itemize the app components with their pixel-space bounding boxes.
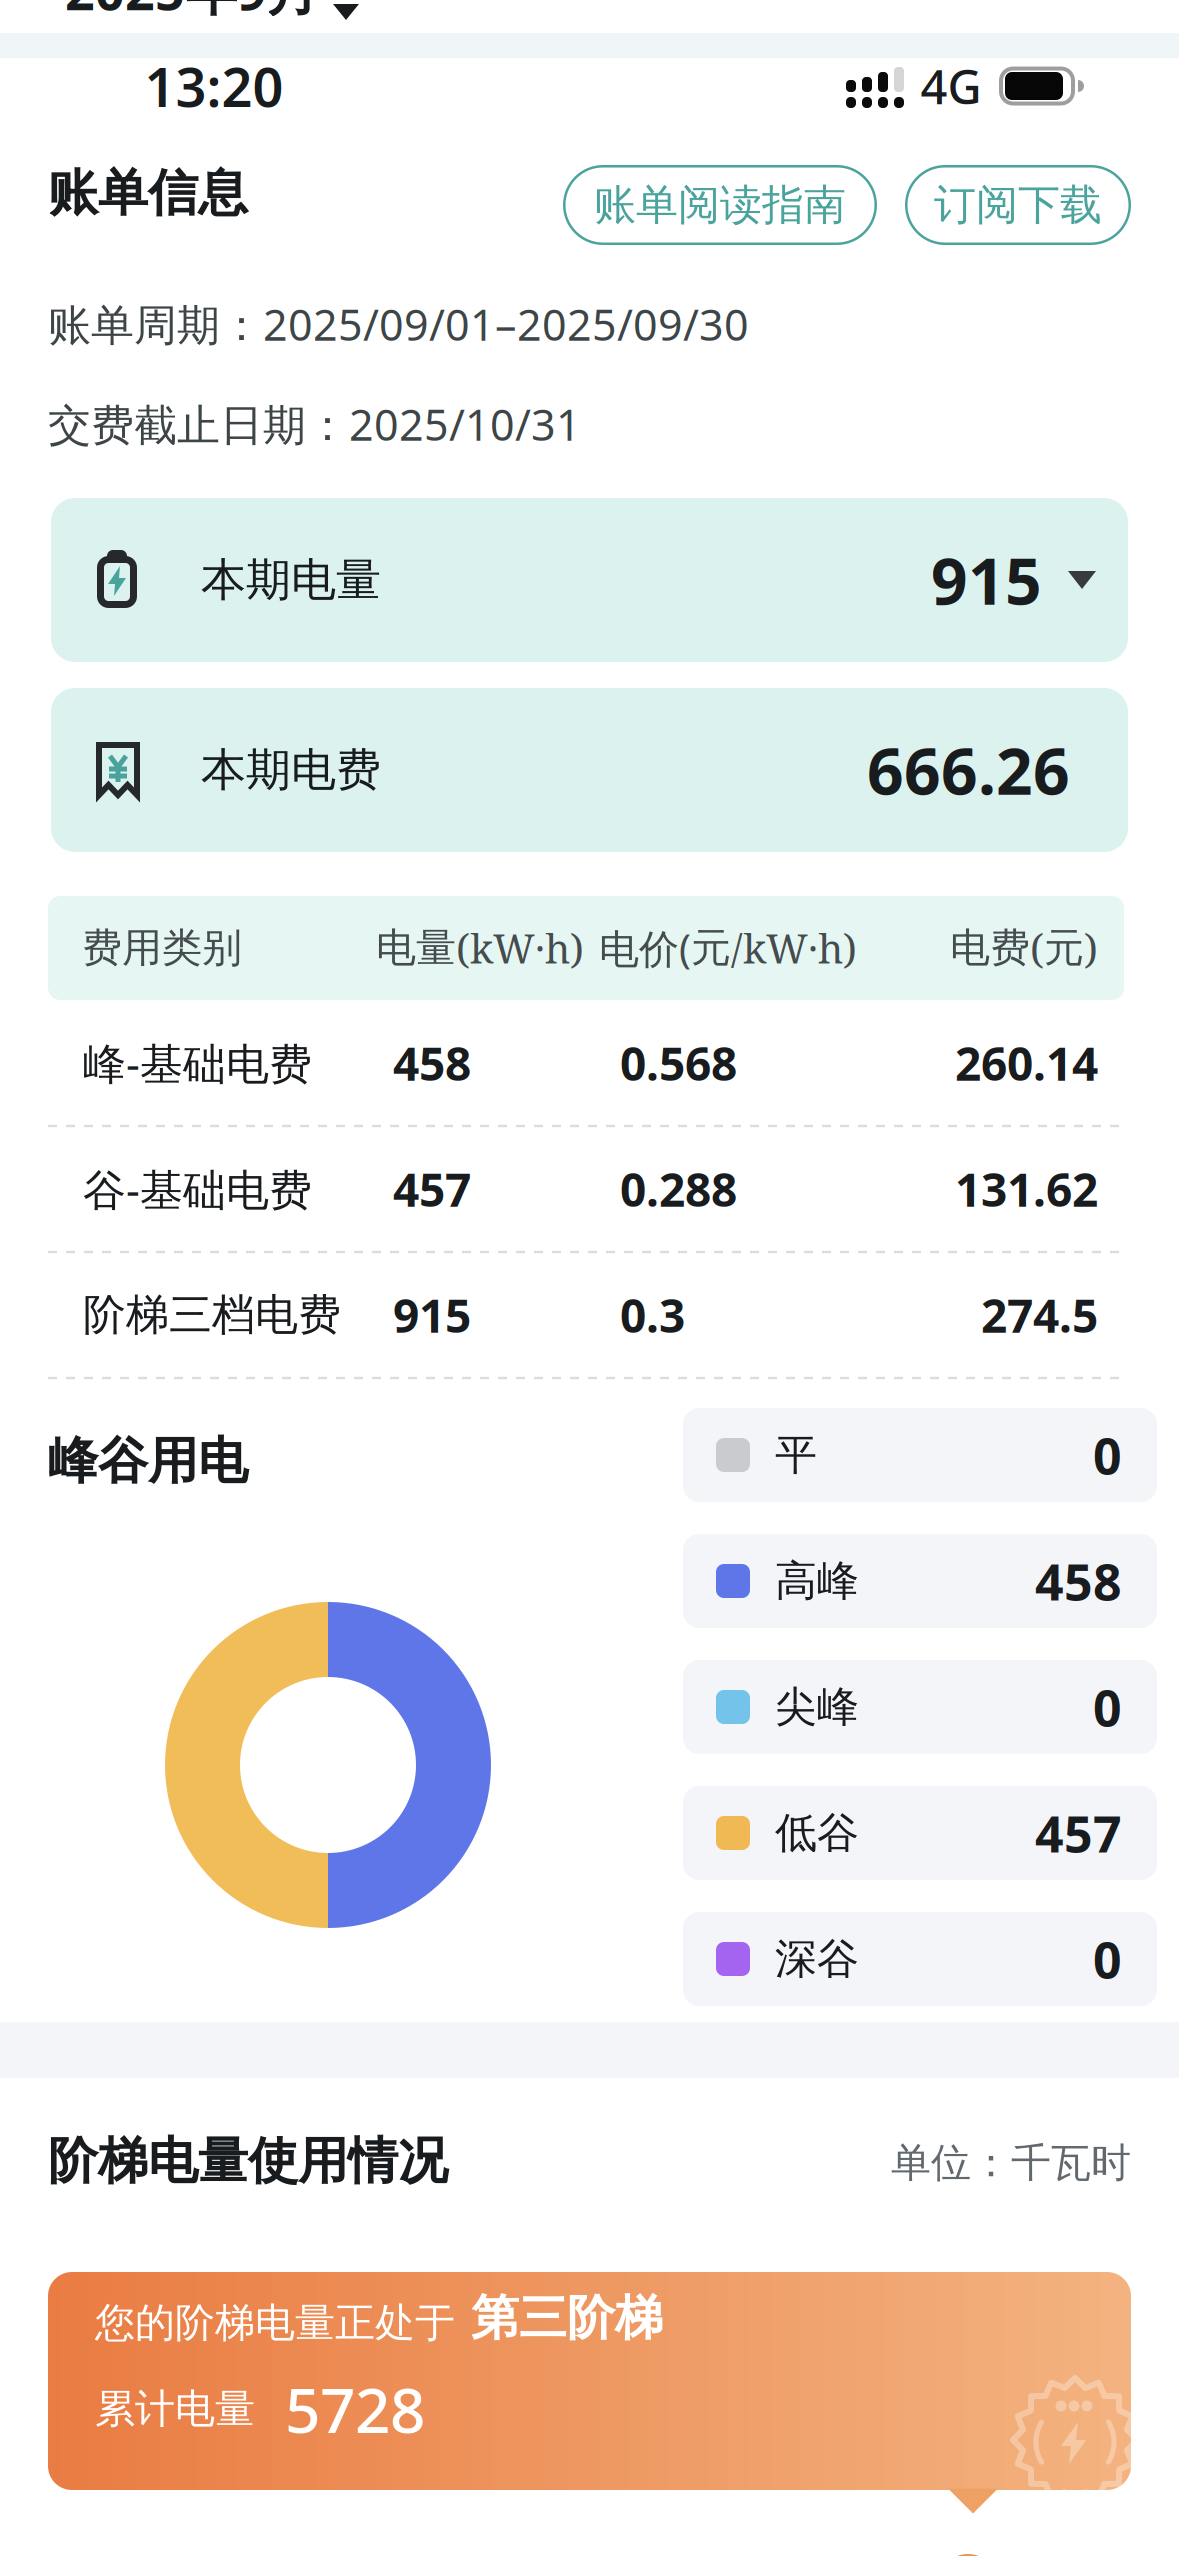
button[interactable]: 订阅下载	[905, 165, 1131, 245]
staticText: 0.3	[620, 1284, 685, 1346]
staticText: 第三阶梯	[471, 2288, 663, 2348]
staticText: 4G	[920, 54, 981, 118]
staticText: (kW·h)	[456, 921, 584, 975]
staticText: 0	[1093, 1925, 1122, 1993]
staticText: 您的阶梯电量正处于	[95, 2298, 455, 2348]
staticText: 0.568	[620, 1032, 737, 1094]
staticText: (	[1030, 921, 1044, 975]
staticText: 峰-基础电费	[83, 1034, 312, 1092]
staticText: 阶梯电量使用情况	[48, 2129, 448, 2192]
staticText: 本期电量	[201, 552, 381, 608]
staticText: 元	[1044, 923, 1084, 973]
staticText: 谷-基础电费	[83, 1160, 312, 1218]
staticText: 457	[393, 1158, 471, 1220]
staticText: 666.26	[867, 726, 1070, 814]
staticText: 915	[393, 1284, 471, 1346]
staticText: 131.62	[955, 1158, 1098, 1220]
staticText: 260.14	[955, 1032, 1098, 1094]
staticText: 2025年9月	[65, 0, 319, 25]
staticText: 阶梯三档电费	[83, 1288, 341, 1342]
staticText: 5728	[285, 2367, 425, 2451]
staticText: 低谷	[775, 1806, 859, 1859]
button[interactable]: 2025年9月	[65, 0, 359, 25]
staticText: 本期电费	[201, 742, 381, 798]
button[interactable]: 本期电量	[51, 498, 1128, 662]
staticText: 电价(	[599, 921, 691, 975]
staticText: 交费截止日期：2025/10/31	[48, 395, 581, 453]
button[interactable]: 账单阅读指南	[563, 165, 877, 245]
staticText: 13:20	[144, 49, 283, 123]
staticText: 高峰	[775, 1554, 859, 1607]
staticText: 尖峰	[775, 1680, 859, 1733]
staticText: 458	[1035, 1547, 1122, 1615]
staticText: 0.288	[620, 1158, 737, 1220]
staticText: 458	[393, 1032, 471, 1094]
staticText: 累计电量	[95, 2384, 255, 2434]
staticText: 0	[1093, 1421, 1122, 1489]
staticText: 电量	[376, 923, 456, 973]
staticText: 平	[775, 1428, 817, 1481]
staticText: 峰谷用电	[48, 1429, 248, 1492]
staticText: 深谷	[775, 1932, 859, 1985]
staticText: 账单阅读指南	[594, 178, 846, 231]
staticText: 457	[1035, 1799, 1122, 1867]
staticText: )	[1084, 921, 1098, 975]
staticText: 订阅下载	[934, 178, 1102, 231]
staticText: /kW·h)	[731, 921, 857, 975]
staticText: 电费	[950, 923, 1030, 973]
staticText: 单位：千瓦时	[891, 2138, 1131, 2188]
staticText: 915	[931, 536, 1042, 624]
staticText: 账单周期：2025/09/01–2025/09/30	[48, 295, 749, 353]
staticText: 费用类别	[82, 923, 242, 973]
staticText: 274.5	[981, 1284, 1098, 1346]
staticText: 账单信息	[48, 161, 248, 224]
staticText: 0	[1093, 1673, 1122, 1741]
staticText: 元	[691, 923, 731, 973]
